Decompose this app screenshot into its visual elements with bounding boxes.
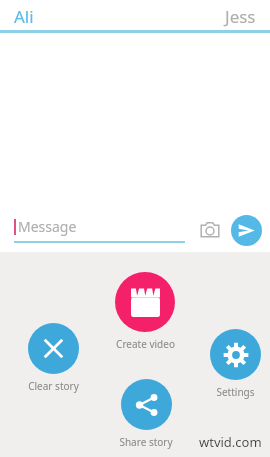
button[interactable]: Message — [14, 217, 185, 243]
button[interactable]: Jess — [135, 0, 270, 33]
staticText: Jess — [225, 5, 256, 28]
staticText: Ali — [14, 5, 34, 28]
staticText: Message — [18, 217, 77, 236]
staticText: Clear story — [28, 379, 79, 393]
button[interactable]: Create video — [105, 272, 185, 351]
button[interactable]: Ali — [0, 0, 135, 33]
button[interactable]: Camera — [195, 215, 225, 245]
button[interactable]: Send — [231, 215, 262, 246]
button[interactable]: Settings — [207, 329, 263, 399]
button[interactable]: Share story — [110, 379, 182, 449]
staticText: Share story — [119, 435, 173, 449]
staticText: wtvid.com — [199, 433, 262, 451]
staticText: Settings — [216, 385, 255, 399]
staticText: Create video — [116, 337, 175, 351]
button[interactable]: Clear story — [14, 323, 93, 393]
